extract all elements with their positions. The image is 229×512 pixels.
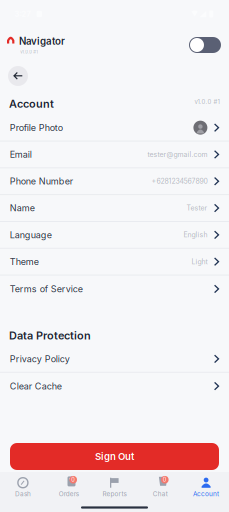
button[interactable]: Email bbox=[0, 141, 229, 167]
button[interactable]: Clear Cache bbox=[0, 373, 229, 399]
staticText: 0 bbox=[71, 476, 75, 483]
staticText: Phone Number bbox=[10, 176, 73, 187]
button[interactable]: Sign Out bbox=[10, 443, 219, 470]
staticText: Tester bbox=[186, 204, 207, 212]
button[interactable]: Profile Photo bbox=[0, 115, 229, 141]
staticText: Account bbox=[9, 97, 54, 110]
button[interactable]: Account bbox=[183, 477, 229, 498]
button[interactable]: Phone Number bbox=[0, 168, 229, 194]
staticText: Light bbox=[191, 257, 207, 266]
button[interactable]: Dash bbox=[0, 477, 46, 498]
button[interactable]: Toggle appearance bbox=[189, 37, 221, 53]
staticText: Language bbox=[10, 229, 52, 240]
button[interactable]: Privacy Policy bbox=[0, 346, 229, 372]
staticText: Data Protection bbox=[9, 329, 91, 342]
staticText: +6281234567890 bbox=[151, 177, 207, 185]
staticText: Theme bbox=[10, 256, 39, 267]
staticText: Sign Out bbox=[95, 451, 134, 462]
staticText: Reports bbox=[102, 490, 126, 498]
staticText: Profile Photo bbox=[10, 122, 63, 133]
staticText: Email bbox=[10, 149, 32, 160]
staticText: Orders bbox=[59, 490, 79, 498]
staticText: Terms of Service bbox=[10, 283, 83, 294]
button[interactable]: 0 bbox=[46, 477, 92, 498]
button[interactable]: Name bbox=[0, 195, 229, 221]
staticText: English bbox=[183, 231, 207, 239]
staticText: Clear Cache bbox=[10, 381, 62, 392]
staticText: Privacy Policy bbox=[10, 353, 70, 364]
button[interactable]: Back bbox=[8, 66, 28, 86]
staticText: v1.0.0 #1 bbox=[20, 49, 38, 55]
button[interactable]: Terms of Service bbox=[0, 275, 229, 302]
staticText: Chat bbox=[153, 490, 168, 498]
button[interactable]: Reports bbox=[92, 477, 137, 498]
staticText: 0 bbox=[163, 476, 167, 483]
staticText: Navigator bbox=[19, 35, 65, 47]
staticText: tester@gmail.com bbox=[147, 150, 207, 159]
button[interactable]: Theme bbox=[0, 249, 229, 275]
staticText: Name bbox=[10, 203, 35, 214]
button[interactable]: 0 bbox=[137, 477, 183, 498]
staticText: v1.0.0 #1 bbox=[194, 98, 219, 105]
staticText: Dash bbox=[15, 490, 31, 498]
staticText: Account bbox=[193, 490, 219, 498]
button[interactable]: Language bbox=[0, 222, 229, 248]
